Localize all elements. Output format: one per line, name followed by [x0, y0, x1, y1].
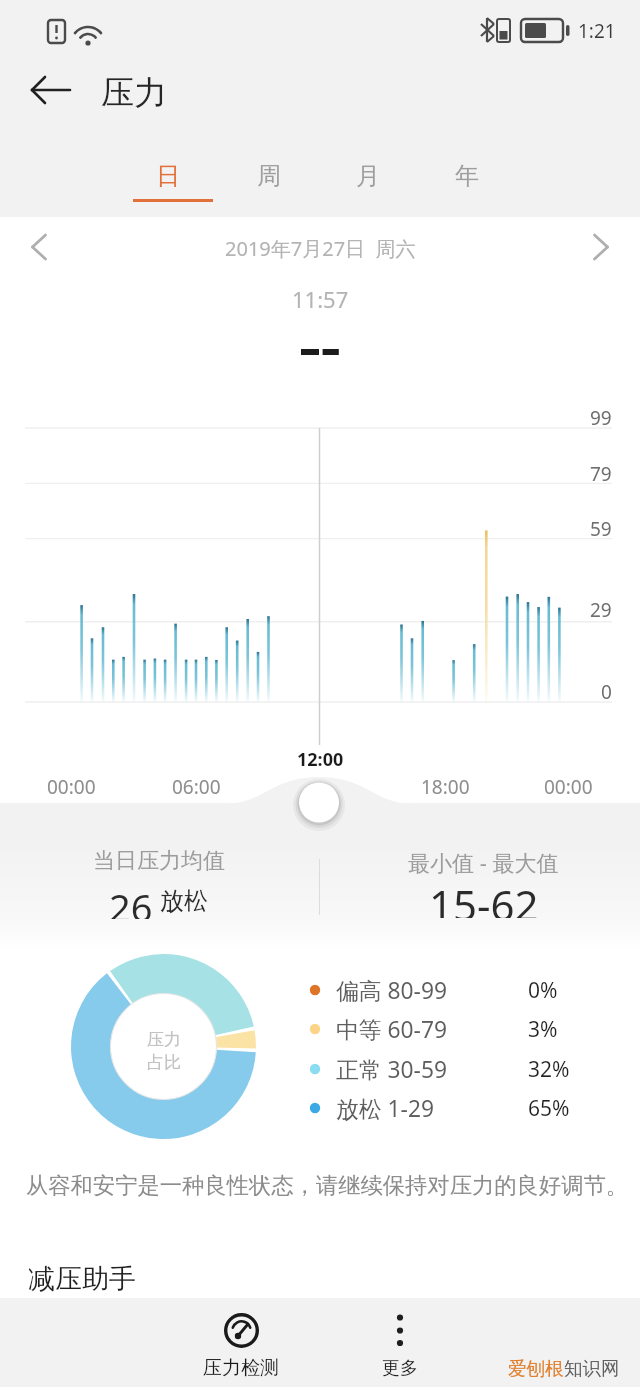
staticText: 11:57 — [292, 284, 349, 314]
staticText: 减压助手 — [28, 1262, 136, 1296]
button[interactable]: 日 — [118, 144, 218, 204]
staticText: 65% — [528, 1094, 570, 1123]
staticText: 2019年7月27日 周六 — [225, 235, 416, 262]
staticText: 压力检测 — [203, 1356, 279, 1380]
staticText: 日 — [156, 161, 180, 191]
button[interactable]: Back — [18, 62, 84, 118]
staticText: 当日压力均值 — [93, 847, 225, 875]
staticText: 压力 — [147, 1029, 181, 1050]
staticText: 06:00 — [172, 774, 221, 800]
staticText: 爱刨根 — [508, 1357, 564, 1380]
staticText: 26 — [109, 881, 153, 919]
button[interactable]: Next day — [575, 221, 627, 273]
staticText: 周 — [257, 161, 281, 191]
staticText: 1:21 — [578, 18, 616, 44]
button[interactable]: 周 — [219, 144, 319, 204]
staticText: 偏高 80-99 — [336, 975, 448, 1005]
staticText: 中等 60-79 — [336, 1014, 448, 1044]
staticText: 29 — [590, 597, 612, 621]
staticText: 0 — [601, 679, 612, 703]
staticText: 79 — [590, 461, 612, 485]
button[interactable]: 偏高 80-99 — [308, 975, 588, 1005]
staticText: 正常 30-59 — [336, 1054, 448, 1084]
staticText: 压力 — [101, 72, 167, 114]
staticText: 18:00 — [421, 774, 470, 800]
staticText: 放松 1-29 — [336, 1093, 434, 1123]
button[interactable]: 月 — [318, 144, 418, 204]
staticText: 更多 — [382, 1357, 418, 1380]
button[interactable]: 放松 1-29 — [308, 1093, 588, 1123]
staticText: 最小值 - 最大值 — [408, 847, 559, 875]
button[interactable]: Previous day — [13, 221, 65, 273]
staticText: 00:00 — [544, 774, 593, 800]
button[interactable]: 更多 — [330, 1300, 470, 1387]
button[interactable]: 中等 60-79 — [308, 1014, 588, 1044]
staticText: 00:00 — [47, 774, 96, 800]
staticText: 99 — [590, 405, 612, 429]
staticText: 占比 — [147, 1052, 181, 1073]
staticText: 59 — [590, 516, 612, 540]
staticText: 月 — [356, 161, 380, 191]
button[interactable]: 压力检测 — [166, 1300, 316, 1387]
staticText: 从容和安宁是一种良性状态，请继续保持对压力的良好调节。 — [26, 1172, 629, 1200]
staticText: 12:00 — [297, 747, 344, 771]
button[interactable]: 正常 30-59 — [308, 1054, 588, 1084]
staticText: 放松 — [160, 886, 208, 916]
button[interactable]: 年 — [417, 144, 517, 204]
staticText: 15-62 — [429, 876, 539, 918]
staticText: 年 — [455, 161, 479, 191]
staticText: 32% — [528, 1055, 570, 1084]
staticText: 3% — [528, 1015, 558, 1044]
staticText: 0% — [528, 976, 558, 1005]
staticText: 知识网 — [564, 1357, 620, 1380]
